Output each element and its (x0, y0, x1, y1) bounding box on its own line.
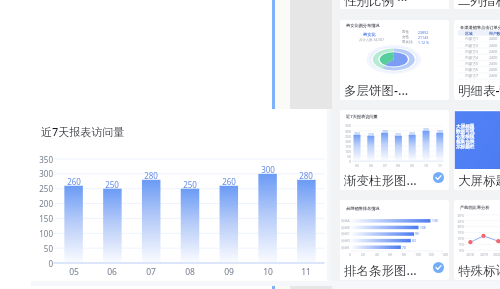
staticText: 明细表-营... (458, 82, 500, 99)
staticText: 2400 (489, 55, 500, 60)
staticText: 0 (345, 252, 355, 256)
staticText: 07 (141, 266, 161, 278)
staticText: 20% (454, 224, 464, 228)
staticText: 300 (420, 127, 432, 132)
staticText: 区域 (465, 31, 479, 36)
staticText: 内蒙古5 (465, 61, 483, 66)
staticText: 化看板模 (456, 134, 475, 140)
staticText: 50 (341, 154, 351, 159)
staticText: 07 (379, 163, 391, 168)
staticText: 大屏标题 (456, 124, 475, 130)
staticText: 82 (412, 238, 421, 242)
staticText: 近7天报表访问量 (41, 124, 125, 139)
staticText: 10 (258, 266, 278, 278)
staticText: 男性 (402, 30, 418, 35)
staticText: 10 (420, 163, 432, 168)
staticText: 140 (440, 252, 449, 256)
staticText: 品牌D (341, 238, 351, 243)
staticText: 数据可视 (456, 129, 475, 135)
staticText: 250 (179, 179, 201, 190)
staticText: 250 (392, 132, 404, 137)
staticText: 2400 (489, 61, 500, 66)
staticText: 200 (35, 198, 53, 209)
staticText: 2019 (478, 252, 490, 256)
staticText: 品牌E (341, 245, 351, 250)
button[interactable]: 近7天报表访问量 (340, 110, 449, 190)
staticText: 200 (341, 139, 351, 144)
other: Selected (433, 172, 444, 183)
staticText: 共计人数 34,567 (359, 37, 393, 42)
staticText: 280 (434, 129, 446, 134)
staticText: 示标题栏 (456, 144, 475, 150)
staticText: 2400 (489, 36, 500, 41)
staticText: 260 (63, 176, 85, 187)
staticText: 内蒙古6 (465, 67, 483, 72)
staticText: 男女比 (363, 32, 387, 37)
staticText: 男女比例分布情况 (346, 23, 396, 28)
staticText: 21143 (418, 35, 438, 40)
staticText: 11 (434, 163, 446, 168)
staticText: 20 (358, 252, 368, 256)
staticText: 10% (454, 236, 464, 240)
staticText: 80 (399, 252, 409, 256)
staticText: 各渠道销售点击订单分布 (460, 25, 500, 30)
staticText: 108 (420, 225, 429, 229)
staticText: 100 (35, 228, 53, 239)
staticText: 品牌A (341, 218, 351, 223)
staticText: 280 (379, 129, 391, 134)
staticText: 60 (385, 252, 395, 256)
staticText: 15% (454, 230, 464, 234)
button[interactable]: 各渠道销售点击订单分布 (454, 20, 500, 100)
staticText: 06 (102, 266, 122, 278)
staticText: 二列指标... (458, 0, 500, 9)
staticText: 0 (35, 258, 53, 269)
staticText: 大屏标题... (458, 172, 500, 189)
staticText: 09 (406, 163, 418, 168)
staticText: 250 (35, 183, 53, 194)
button[interactable]: 近7天报表访问量 (31, 109, 327, 281)
staticText: 2018 (464, 252, 476, 256)
staticText: 内蒙古2 (465, 43, 483, 48)
staticText: 260 (351, 131, 363, 136)
staticText: 250 (341, 134, 351, 139)
staticText: 内蒙古4 (465, 55, 483, 60)
staticText: 品牌B (341, 225, 351, 230)
staticText: 350 (341, 123, 351, 128)
staticText: 70 (402, 245, 411, 249)
staticText: 100 (413, 252, 423, 256)
staticText: 排名条形图... (344, 262, 417, 279)
button[interactable]: 品牌销售排名情况 (340, 200, 449, 280)
staticText: 08 (180, 266, 200, 278)
staticText: 2400 (489, 67, 500, 72)
staticText: 250 (365, 132, 377, 137)
staticText: 内蒙古3 (465, 49, 483, 54)
staticText: 11 (296, 266, 316, 278)
staticText: 女性 (402, 35, 418, 40)
staticText: 2400 (489, 49, 500, 54)
staticText: 内蒙古1 (465, 36, 483, 41)
button[interactable]: 产能同比率分析 (454, 200, 500, 280)
staticText: 性别比例 ··· (344, 0, 408, 9)
staticText: 300 (35, 168, 53, 179)
button[interactable]: 二列指标... (454, 0, 500, 9)
staticText: 260 (218, 176, 240, 187)
button[interactable]: 男女比例分布情况 (340, 20, 449, 100)
other: Selected (433, 262, 444, 273)
staticText: 内蒙古7 (465, 73, 483, 78)
staticText: 150 (35, 213, 53, 224)
button[interactable]: 性别比例 ··· (340, 0, 449, 9)
button[interactable]: 大屏标题 (454, 110, 500, 190)
staticText: 280 (295, 170, 317, 181)
staticText: 2400 (489, 73, 500, 78)
staticText: 23852 (418, 30, 438, 35)
staticText: 2020 (491, 252, 500, 256)
staticText: 150 (341, 144, 351, 149)
staticText: 300 (257, 164, 279, 175)
staticText: 06 (365, 163, 377, 168)
staticText: 40 (372, 252, 382, 256)
staticText: 09 (219, 266, 239, 278)
staticText: 08 (392, 163, 404, 168)
staticText: 30% (454, 213, 464, 217)
staticText: 1.12 % (418, 40, 438, 45)
staticText: 产能同比率分析 (460, 205, 500, 210)
